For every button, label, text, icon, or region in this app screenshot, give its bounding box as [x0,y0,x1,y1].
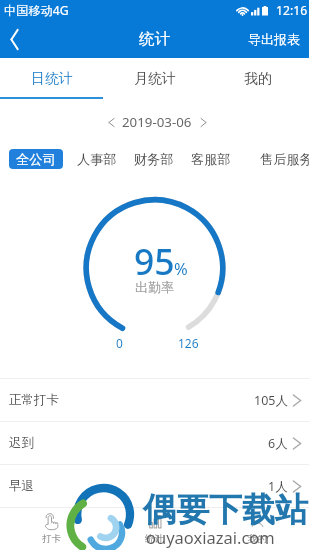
button[interactable]: 迟到 [0,422,309,464]
staticText: 导出报表 [248,31,300,47]
staticText: 6人 [268,435,288,452]
button[interactable]: 前一天 [100,111,122,133]
button[interactable]: 早退 [0,465,309,507]
staticText: 正常打卡 [9,392,59,408]
staticText: 打卡 [42,533,61,545]
staticText: 客服部 [191,151,231,168]
button[interactable]: 我的 [206,58,309,99]
staticText: 人事部 [77,151,117,168]
button[interactable]: 我的 [206,508,309,550]
button[interactable]: 月统计 [103,58,206,99]
staticText: 1人 [268,478,288,495]
button[interactable]: 正常打卡 [0,379,309,421]
staticText: 迟到 [9,435,34,451]
button[interactable]: 统计 [103,508,206,550]
button[interactable]: 导出报表 [239,20,309,58]
staticText: 中国移动4G [4,2,69,19]
staticText: 日统计 [31,70,73,88]
staticText: 早退 [9,478,34,494]
staticText: 0 [116,335,123,351]
button[interactable]: 财务部 [128,148,180,170]
button[interactable]: 客服部 [185,148,237,170]
staticText: 全公司 [16,151,56,168]
button[interactable]: 全公司 [9,149,63,169]
button[interactable]: 返回 [0,20,32,58]
staticText: 126 [178,335,199,351]
staticText: % [174,257,188,279]
staticText: 我的 [248,533,267,545]
button[interactable]: 后一天 [192,111,214,133]
button[interactable]: 人事部 [71,148,123,170]
button[interactable]: 售后服务 [254,148,309,170]
staticText: 月统计 [134,70,176,88]
staticText: 105人 [254,392,288,409]
button[interactable]: 打卡 [0,508,103,550]
staticText: 95 [134,237,175,285]
staticText: 统计 [145,533,164,545]
staticText: 我的 [244,70,272,88]
staticText: 出勤率 [135,279,174,295]
staticText: 2019-03-06 [122,113,192,131]
staticText: 财务部 [134,151,174,168]
staticText: 售后服务 [260,151,309,168]
staticText: ouyaoxiazai.com [146,526,275,548]
staticText: 偶要下载站 [143,489,308,531]
staticText: 12:16 [276,2,308,19]
button[interactable]: 日统计 [0,58,103,99]
staticText: 统计 [139,29,170,49]
